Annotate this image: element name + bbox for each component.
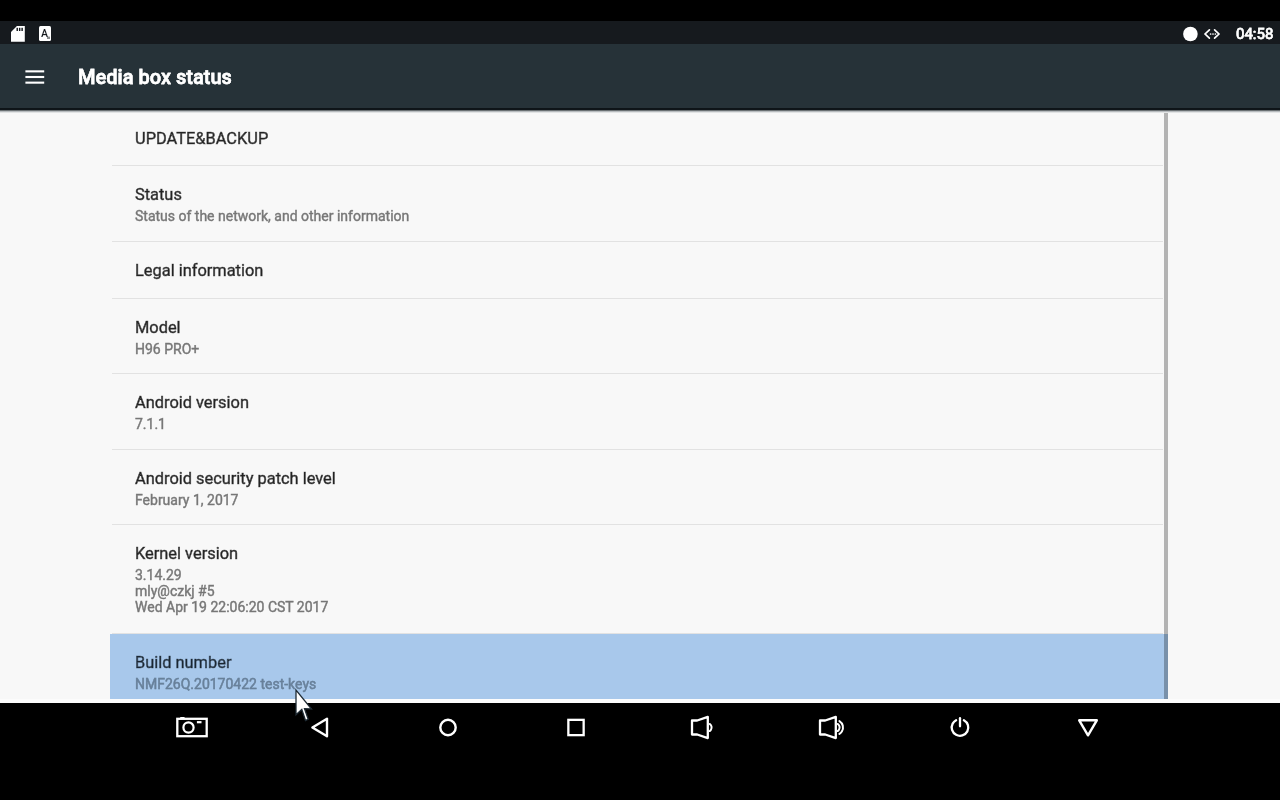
button[interactable]: Back <box>256 703 384 752</box>
button[interactable]: Volume down <box>640 703 768 752</box>
staticText: February 1, 2017 <box>135 492 239 508</box>
button[interactable]: Android version <box>110 374 1168 450</box>
staticText: Model <box>135 318 181 337</box>
staticText: Kernel version <box>135 544 239 563</box>
button[interactable]: UPDATE&BACKUP <box>110 108 1168 166</box>
staticText: Status <box>135 185 182 204</box>
staticText: NMF26Q.20170422 test-keys <box>135 676 317 692</box>
button[interactable]: Power <box>896 703 1024 752</box>
staticText: Status of the network, and other informa… <box>135 208 410 224</box>
button[interactable]: Kernel version <box>110 525 1168 634</box>
staticText: 3.14.29 mly@czkj #5 Wed Apr 19 22:06:20 … <box>135 567 329 615</box>
staticText: Legal information <box>135 261 264 280</box>
staticText: UPDATE&BACKUP <box>135 129 269 148</box>
button[interactable]: Android security patch level <box>110 450 1168 525</box>
button[interactable]: Open navigation menu <box>15 62 55 92</box>
button[interactable]: Volume up <box>768 703 896 752</box>
button[interactable]: Status <box>110 166 1168 242</box>
button[interactable]: Screenshot <box>128 703 256 752</box>
button[interactable]: Model <box>110 299 1168 374</box>
staticText: 7.1.1 <box>135 416 166 432</box>
staticText: Media box status <box>78 65 232 88</box>
staticText: A <box>41 27 49 39</box>
button[interactable]: Home <box>384 703 512 752</box>
button[interactable]: Build number <box>110 634 1168 699</box>
staticText: Android security patch level <box>135 469 336 488</box>
button[interactable]: Legal information <box>110 242 1168 299</box>
staticText: 04:58 <box>1236 25 1274 43</box>
staticText: Android version <box>135 393 249 412</box>
staticText: Build number <box>135 653 232 672</box>
staticText: H96 PRO+ <box>135 341 200 357</box>
button[interactable]: Recent apps <box>512 703 640 752</box>
button[interactable]: Hide navigation bar <box>1024 703 1152 752</box>
